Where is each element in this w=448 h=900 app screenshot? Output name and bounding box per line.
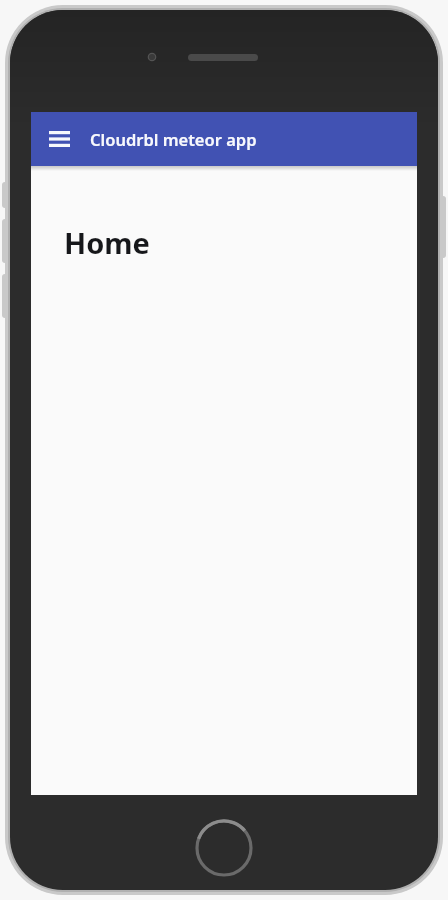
staticText: Cloudrbl meteor app (90, 128, 257, 150)
button[interactable]: Open navigation menu (39, 119, 79, 159)
staticText: Home (64, 223, 150, 262)
